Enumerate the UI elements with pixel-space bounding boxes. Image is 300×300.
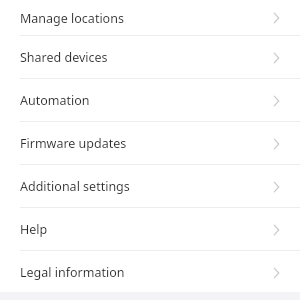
staticText: Shared devices xyxy=(20,49,108,66)
staticText: Legal information xyxy=(20,264,125,281)
button[interactable]: Manage locations xyxy=(0,0,300,36)
staticText: Firmware updates xyxy=(20,135,127,152)
button[interactable]: Shared devices xyxy=(0,36,300,79)
staticText: Manage locations xyxy=(20,10,124,27)
staticText: Automation xyxy=(20,92,90,109)
staticText: Additional settings xyxy=(20,178,130,195)
button[interactable]: Additional settings xyxy=(0,165,300,208)
button[interactable]: Automation xyxy=(0,79,300,122)
staticText: Help xyxy=(20,221,48,238)
button[interactable]: Firmware updates xyxy=(0,122,300,165)
button[interactable]: Legal information xyxy=(0,251,300,294)
button[interactable]: Help xyxy=(0,208,300,251)
